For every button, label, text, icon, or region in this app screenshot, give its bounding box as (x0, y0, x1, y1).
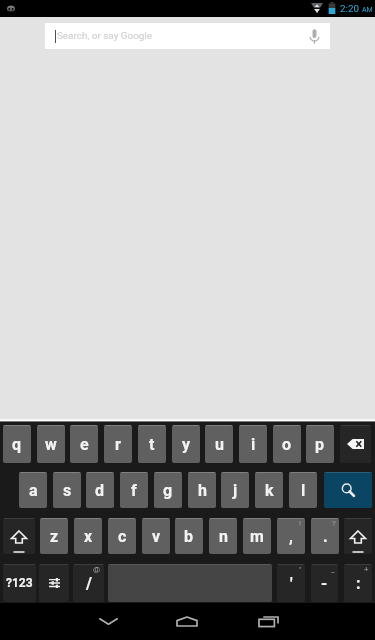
staticText: u (215, 435, 224, 454)
staticText: ! (299, 519, 302, 528)
button[interactable]: j (221, 472, 249, 508)
button[interactable]: . (311, 518, 339, 554)
button[interactable]: x (74, 518, 102, 554)
staticText: q (12, 435, 22, 454)
button[interactable]: k (255, 472, 283, 508)
button[interactable]: a (19, 472, 47, 508)
button[interactable]: h (188, 472, 216, 508)
button[interactable]: o (273, 425, 301, 463)
staticText: j (233, 481, 238, 500)
staticText: s (63, 481, 72, 500)
button[interactable]: Shift (3, 518, 35, 554)
staticText: , (289, 527, 293, 546)
button[interactable]: - (311, 564, 338, 602)
staticText: ' (290, 574, 293, 593)
staticText: - (321, 574, 328, 593)
button[interactable]: Shift (344, 518, 372, 554)
button[interactable]: : (344, 564, 372, 602)
staticText: m (250, 527, 264, 546)
button[interactable]: d (86, 472, 114, 508)
button[interactable]: Home (163, 603, 211, 640)
staticText: @ (93, 565, 101, 574)
button[interactable]: u (205, 425, 233, 463)
button[interactable]: z (40, 518, 68, 554)
other: Voice search (310, 29, 319, 44)
staticText: Search, or say Google (57, 30, 152, 42)
button[interactable]: s (53, 472, 81, 508)
button[interactable]: Search (324, 472, 372, 508)
staticText: z (50, 527, 59, 546)
staticText: v (152, 527, 161, 546)
staticText: _ (331, 565, 335, 574)
button[interactable]: Search, or say Google (45, 23, 330, 49)
button[interactable]: b (175, 518, 203, 554)
button[interactable]: v (142, 518, 170, 554)
button[interactable]: q (3, 425, 31, 463)
staticText: / (86, 574, 92, 593)
staticText: " (299, 565, 302, 574)
button[interactable]: y (172, 425, 200, 463)
staticText: ? (332, 519, 336, 528)
staticText: k (265, 481, 274, 500)
staticText: r (115, 435, 121, 454)
button[interactable]: r (104, 425, 132, 463)
staticText: t (149, 435, 155, 454)
staticText: d (95, 481, 105, 500)
button[interactable]: Recent apps (244, 603, 292, 640)
staticText: a (29, 481, 38, 500)
button[interactable]: / (73, 564, 104, 602)
staticText: w (45, 435, 57, 454)
button[interactable]: n (209, 518, 237, 554)
button[interactable]: Space (108, 564, 272, 602)
button[interactable]: g (154, 472, 182, 508)
button[interactable]: Hide keyboard (84, 603, 132, 640)
staticText: p (315, 435, 325, 454)
staticText: x (84, 527, 93, 546)
staticText: i (251, 435, 256, 454)
staticText: : (356, 574, 361, 593)
staticText: e (80, 435, 89, 454)
staticText: f (131, 481, 137, 500)
button[interactable]: f (120, 472, 148, 508)
button[interactable]: t (138, 425, 166, 463)
button[interactable]: ' (277, 564, 305, 602)
staticText: h (198, 481, 207, 500)
staticText: . (323, 527, 328, 546)
button[interactable]: Backspace (340, 425, 371, 463)
staticText: AM (362, 6, 373, 14)
button[interactable]: ?123 (3, 564, 36, 602)
staticText: b (184, 527, 194, 546)
staticText: + (364, 565, 369, 574)
staticText: y (182, 435, 191, 454)
staticText: 2:20 (340, 3, 359, 14)
staticText: o (282, 435, 292, 454)
button[interactable]: l (289, 472, 317, 508)
staticText: g (163, 481, 173, 500)
staticText: c (118, 527, 127, 546)
staticText: ?123 (6, 576, 33, 590)
button[interactable]: i (239, 425, 267, 463)
button[interactable]: Input settings (39, 564, 69, 602)
button[interactable]: p (306, 425, 334, 463)
button[interactable]: w (37, 425, 65, 463)
button[interactable]: c (108, 518, 136, 554)
button[interactable]: , (277, 518, 305, 554)
staticText: l (301, 481, 306, 500)
button[interactable]: m (243, 518, 271, 554)
staticText: n (219, 527, 228, 546)
button[interactable]: e (70, 425, 98, 463)
